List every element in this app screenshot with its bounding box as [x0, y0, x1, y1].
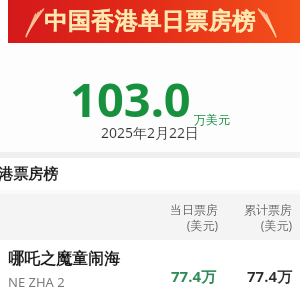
staticText: 77.4万 — [171, 266, 216, 286]
button[interactable]: 哪吒之魔童闹海 — [0, 240, 300, 300]
button[interactable]: 103.0 — [0, 43, 300, 152]
staticText: 2025年2月22日 — [101, 123, 200, 142]
button[interactable]: 中国香港单日票房榜 — [0, 0, 300, 43]
staticText: (美元) — [260, 217, 292, 233]
staticText: 万美元 — [194, 112, 230, 127]
staticText: 哪吒之魔童闹海 — [8, 249, 120, 269]
button[interactable]: 当日票房 — [0, 194, 300, 240]
staticText: 中国香港单日票房榜 — [44, 7, 256, 36]
staticText: 港票房榜 — [0, 165, 58, 184]
staticText: NE ZHA 2 — [8, 273, 65, 291]
staticText: 当日票房 — [170, 202, 218, 217]
staticText: 103.0 — [70, 67, 191, 131]
staticText: (美元) — [186, 217, 218, 233]
staticText: 累计票房 — [244, 202, 292, 217]
staticText: 77.4万 — [247, 266, 292, 286]
button[interactable]: 港票房榜 — [0, 158, 300, 190]
